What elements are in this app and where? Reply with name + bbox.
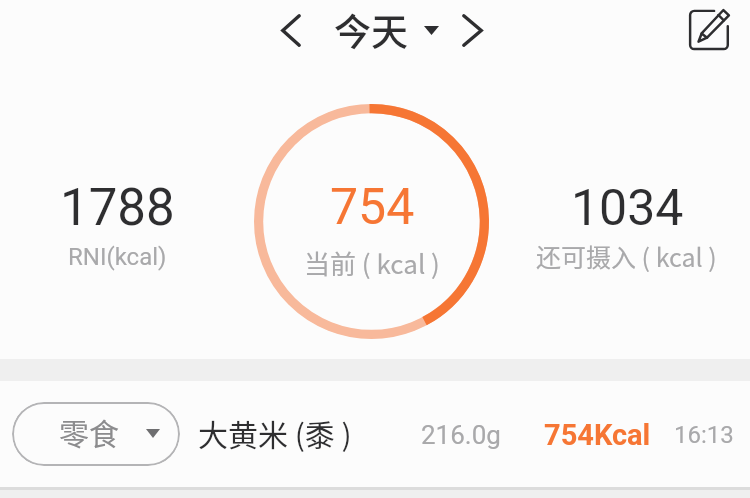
staticText: 1034 xyxy=(571,179,684,238)
staticText: RNI(kcal) xyxy=(68,243,167,271)
staticText: 1788 xyxy=(60,178,175,238)
staticText: 当前 ( kcal ) xyxy=(304,244,440,282)
staticText: 零食 xyxy=(59,410,119,453)
button[interactable]: Next day xyxy=(450,8,495,53)
staticText: 还可摄入 ( kcal ) xyxy=(536,238,717,274)
button[interactable]: 零食 xyxy=(0,379,750,498)
staticText: 754 xyxy=(330,178,415,237)
button[interactable]: 今天 xyxy=(326,4,446,56)
staticText: 大黄米 (黍 ) xyxy=(198,411,352,454)
button[interactable]: Previous day xyxy=(268,8,313,53)
staticText: 16:13 xyxy=(674,421,734,449)
staticText: 今天 xyxy=(334,3,408,55)
staticText: 754Kcal xyxy=(544,418,651,452)
button[interactable]: 零食 xyxy=(12,402,180,466)
button[interactable]: Edit xyxy=(678,0,734,55)
staticText: 216.0g xyxy=(421,420,501,450)
